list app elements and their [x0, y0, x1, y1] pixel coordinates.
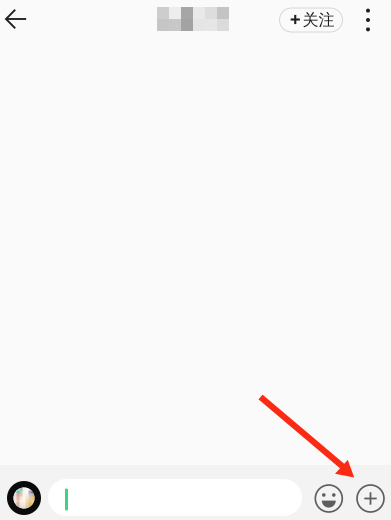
button[interactable]: Emoji — [315, 484, 343, 512]
button[interactable]: 关注 — [276, 3, 346, 37]
button[interactable]: Back — [1, 2, 31, 36]
staticText: 关注 — [302, 10, 334, 30]
button[interactable]: More options — [356, 484, 384, 512]
button[interactable]: More — [353, 3, 383, 37]
